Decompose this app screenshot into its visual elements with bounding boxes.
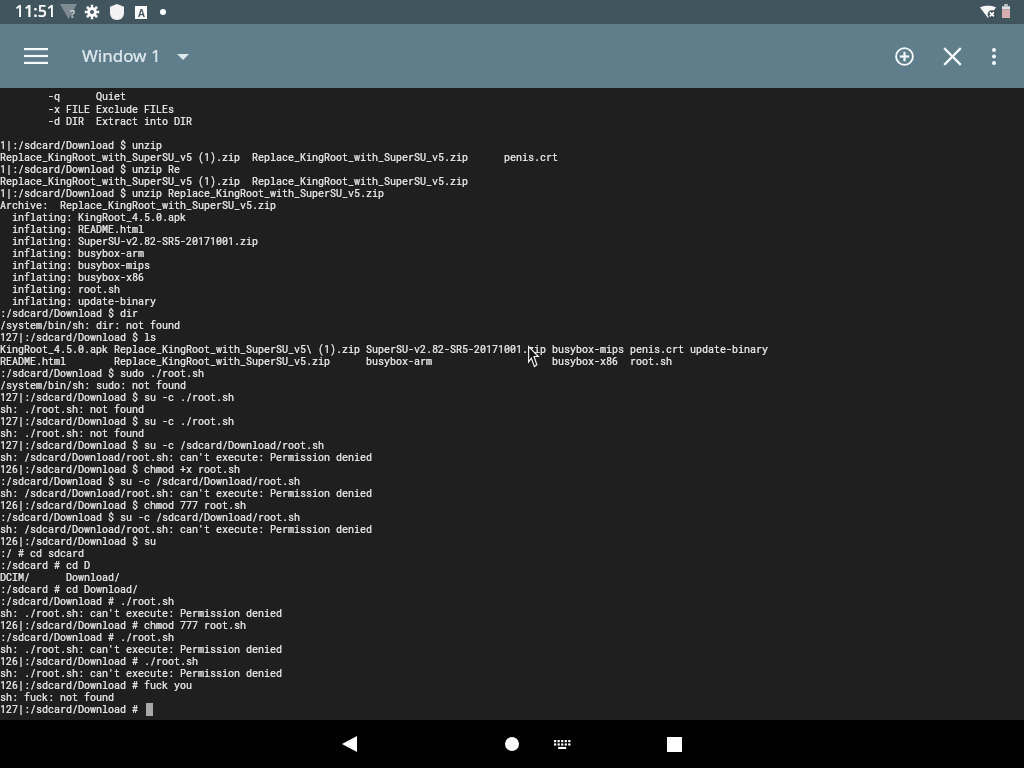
button[interactable]: Back: [324, 720, 372, 768]
button[interactable]: Home: [488, 720, 536, 768]
button[interactable]: Close session: [928, 32, 976, 80]
button[interactable]: Window 1: [82, 44, 189, 67]
staticText: A: [138, 6, 145, 19]
staticText: 11:51: [15, 0, 56, 22]
button[interactable]: New session: [880, 32, 928, 80]
button[interactable]: Recent apps: [650, 720, 698, 768]
staticText: Window 1: [82, 44, 161, 67]
button[interactable]: -q Quiet -x FILE Exclude FILEs -d DIR Ex…: [0, 88, 1024, 720]
button[interactable]: Show keyboard: [538, 720, 586, 768]
staticText: -q Quiet -x FILE Exclude FILEs -d DIR Ex…: [0, 90, 769, 715]
button[interactable]: More options: [970, 32, 1018, 80]
button[interactable]: Open navigation drawer: [12, 32, 60, 80]
staticText: ?: [70, 6, 76, 21]
